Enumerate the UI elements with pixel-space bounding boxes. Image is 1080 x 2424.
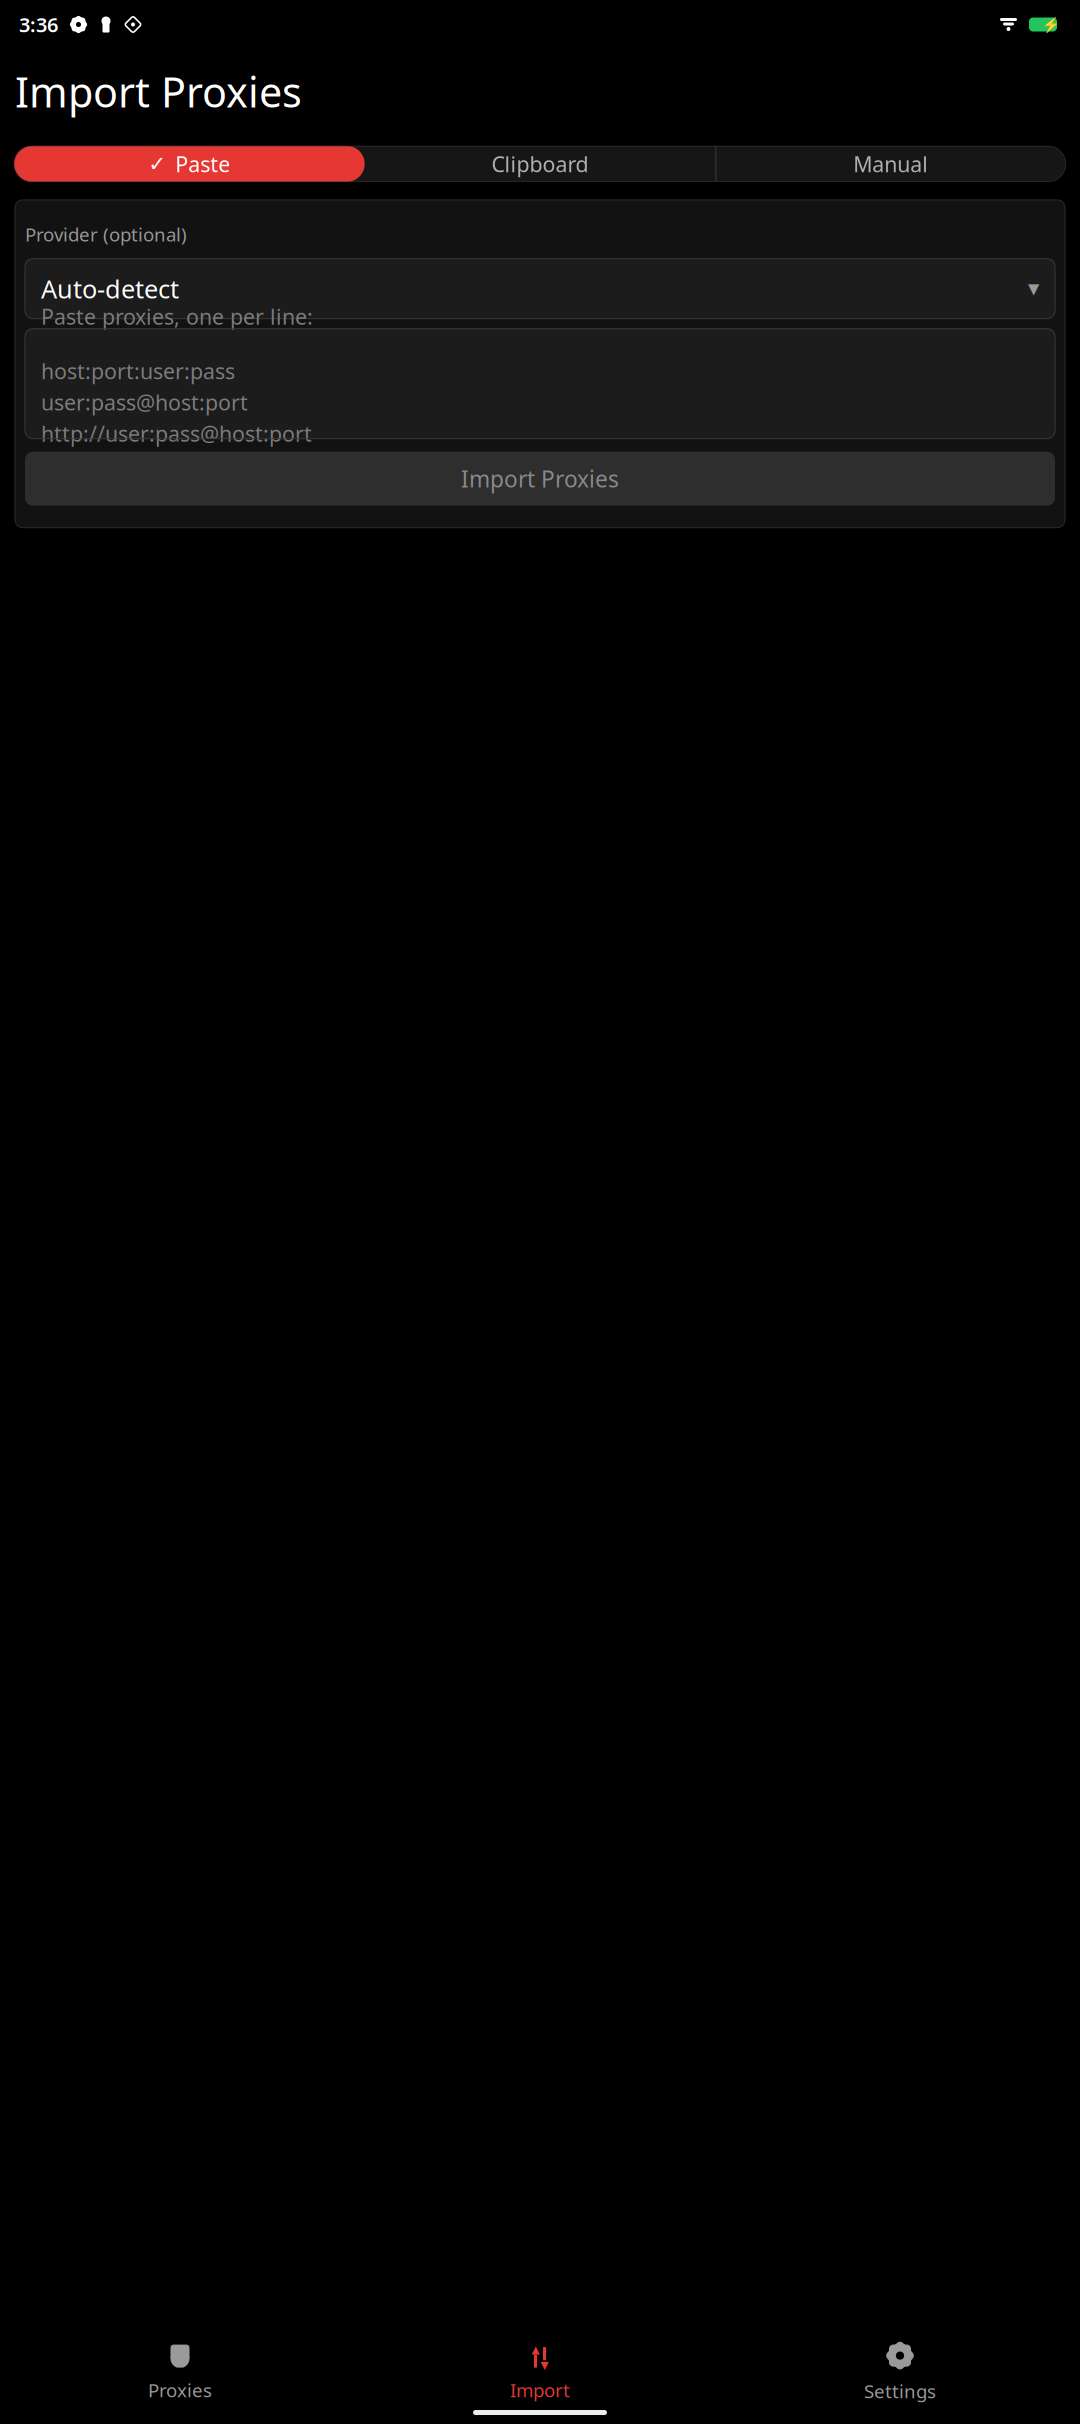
staticText: user:pass@host:port xyxy=(41,388,248,416)
button[interactable]: Manual xyxy=(715,146,1066,182)
staticText: host,port,user,pass xyxy=(41,451,231,479)
staticText: ✓ xyxy=(148,152,166,176)
button[interactable]: Clipboard xyxy=(365,146,715,182)
staticText: ⚡ xyxy=(1042,16,1060,33)
staticText: host:port:user:pass xyxy=(41,357,235,385)
staticText: Settings xyxy=(864,2379,936,2403)
staticText: Auto-detect xyxy=(41,272,179,305)
button[interactable]: Settings xyxy=(720,2343,1080,2403)
button[interactable]: Import Proxies xyxy=(25,452,1055,506)
staticText: Import Proxies xyxy=(15,64,302,119)
staticText: 3:36 xyxy=(19,11,58,38)
staticText: ▲ xyxy=(531,2344,539,2356)
staticText: Manual xyxy=(853,150,928,178)
staticText: Paste xyxy=(175,150,230,178)
staticText: Import xyxy=(510,2378,570,2402)
staticText: ▼ xyxy=(540,2359,548,2371)
staticText: http://user:pass@host:port xyxy=(41,419,312,448)
staticText: Paste proxies, one per line: xyxy=(41,302,313,331)
button[interactable]: Proxies xyxy=(0,2344,360,2402)
staticText: Provider (optional) xyxy=(25,222,187,247)
staticText: Clipboard xyxy=(491,150,588,178)
staticText: ▼ xyxy=(1028,280,1039,297)
staticText: Proxies xyxy=(148,2378,212,2402)
button[interactable]: Auto-detect xyxy=(25,259,1055,319)
button[interactable]: ✓ xyxy=(14,146,365,182)
staticText: Import Proxies xyxy=(461,464,619,494)
button[interactable]: ▲ xyxy=(360,2344,720,2402)
